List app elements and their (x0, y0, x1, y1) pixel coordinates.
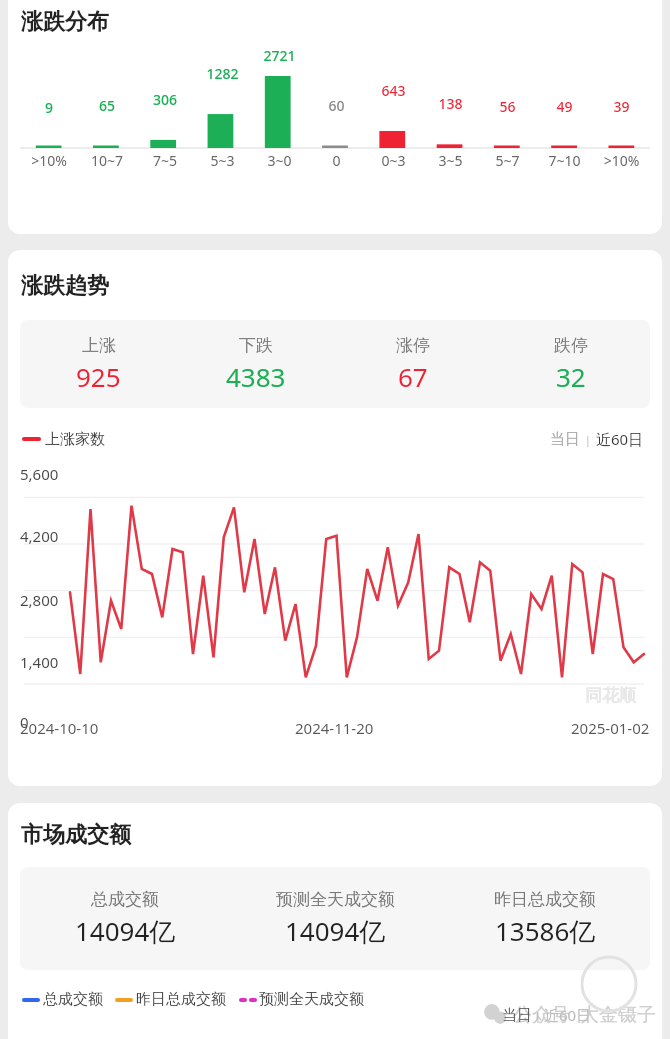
staticText: 上涨家数 (45, 430, 105, 449)
staticText: 当日 (550, 430, 580, 449)
staticText: 上涨 (82, 335, 116, 356)
staticText: 13586亿 (495, 913, 596, 949)
staticText: 4,200 (20, 526, 59, 546)
staticText: 49 (536, 97, 593, 116)
staticText: 5~7 (479, 151, 536, 170)
staticText: 总成交额 (91, 889, 159, 910)
staticText: 3~5 (422, 151, 479, 170)
staticText: 9 (20, 98, 78, 117)
staticText: 56 (479, 97, 536, 116)
button[interactable]: 下跌 (177, 335, 334, 394)
staticText: >10% (20, 151, 78, 170)
staticText: 昨日总成交额 (494, 889, 596, 910)
staticText: 5,600 (20, 464, 59, 484)
staticText: 预测全天成交额 (276, 889, 395, 910)
staticText: 643 (365, 81, 422, 100)
button[interactable]: 预测全天成交额 (240, 990, 364, 1009)
staticText: 市场成交额 (21, 821, 131, 849)
staticText: 4383 (226, 359, 286, 394)
staticText: | (532, 1008, 544, 1023)
button[interactable]: 预测全天成交额 (230, 889, 440, 949)
staticText: 跌停 (554, 335, 588, 356)
staticText: 67 (398, 359, 428, 394)
staticText: 60 (308, 96, 365, 115)
staticText: >10% (593, 151, 650, 170)
staticText: 同花顺 (585, 685, 636, 706)
button[interactable]: 昨日总成交额 (117, 990, 226, 1009)
staticText: 2025-01-02 (571, 718, 650, 738)
staticText: 公众号 大金镊子 (513, 1001, 656, 1027)
button[interactable]: 昨日总成交额 (440, 889, 650, 949)
staticText: 1282 (194, 64, 251, 83)
staticText: | (582, 432, 594, 447)
staticText: 925 (76, 359, 121, 394)
staticText: 预测全天成交额 (259, 990, 364, 1009)
staticText: 3~0 (251, 151, 308, 170)
staticText: 306 (136, 90, 194, 109)
staticText: 10~7 (78, 151, 136, 170)
staticText: 1,400 (20, 652, 59, 672)
staticText: 5~3 (194, 151, 251, 170)
button[interactable]: 当日 (548, 430, 582, 449)
staticText: 14094亿 (285, 913, 386, 949)
staticText: 2721 (251, 46, 308, 65)
staticText: 涨跌趋势 (21, 272, 109, 300)
staticText: 2,800 (20, 590, 59, 610)
staticText: 32 (556, 359, 586, 394)
button[interactable]: 涨停 (334, 335, 492, 394)
staticText: 2024-11-20 (295, 718, 374, 738)
staticText: 7~10 (536, 151, 593, 170)
staticText: 昨日总成交额 (136, 990, 226, 1009)
staticText: 当日 (502, 1006, 532, 1025)
staticText: 2024-10-10 (20, 718, 99, 738)
button[interactable]: 跌停 (492, 335, 650, 394)
staticText: 39 (593, 97, 650, 116)
staticText: 近60日 (596, 429, 644, 449)
staticText: 14094亿 (75, 913, 176, 949)
staticText: 0~3 (365, 151, 422, 170)
button[interactable]: 上涨 (20, 335, 177, 394)
staticText: 0 (20, 712, 29, 732)
staticText: 7~5 (136, 151, 194, 170)
staticText: 涨停 (396, 335, 430, 356)
button[interactable]: 总成交额 (20, 889, 230, 949)
staticText: 0 (308, 151, 365, 170)
button[interactable]: 总成交额 (24, 990, 103, 1009)
staticText: 下跌 (239, 335, 273, 356)
staticText: 总成交额 (43, 990, 103, 1009)
staticText: 65 (78, 96, 136, 115)
button[interactable]: 近60日 (594, 429, 646, 449)
staticText: 涨跌分布 (21, 8, 109, 36)
staticText: 138 (422, 94, 479, 113)
staticText: 近60日 (544, 1005, 592, 1025)
